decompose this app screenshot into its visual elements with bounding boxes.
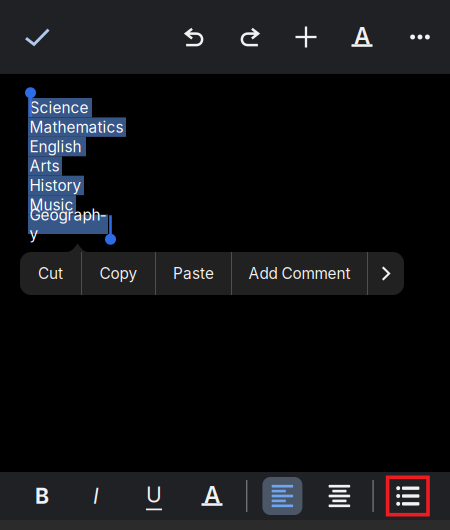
staticText: Music xyxy=(29,196,73,214)
button[interactable]: Italic xyxy=(77,475,115,516)
button[interactable]: Undo xyxy=(166,0,222,74)
staticText: A xyxy=(354,22,370,49)
button[interactable]: Add Comment xyxy=(232,252,367,295)
staticText: Add Comment xyxy=(248,264,350,283)
staticText: History xyxy=(29,176,81,195)
staticText: Geography xyxy=(29,206,105,243)
button[interactable]: Bulleted list xyxy=(386,475,430,516)
button[interactable]: Align left xyxy=(262,477,302,515)
button[interactable]: Text formatting xyxy=(334,0,390,74)
staticText: Arts xyxy=(29,157,59,175)
button[interactable]: More xyxy=(390,0,450,74)
staticText: Paste xyxy=(173,264,214,283)
staticText: B xyxy=(35,483,49,509)
staticText: U xyxy=(146,482,162,507)
staticText: English xyxy=(29,137,81,156)
button[interactable]: Copy xyxy=(82,252,155,295)
button[interactable]: Redo xyxy=(222,0,278,74)
staticText: I xyxy=(93,483,99,509)
staticText: Science xyxy=(29,98,88,117)
staticText: Cut xyxy=(38,264,63,283)
button[interactable]: Accept xyxy=(0,0,74,74)
button[interactable]: Underline xyxy=(135,475,173,516)
staticText: Copy xyxy=(99,264,137,283)
button[interactable]: Text colour xyxy=(193,475,231,516)
button[interactable]: Cut xyxy=(20,252,81,295)
button[interactable]: Paste xyxy=(156,252,231,295)
button[interactable]: Align right xyxy=(320,477,358,515)
button[interactable]: More actions xyxy=(368,252,404,295)
button[interactable]: Bold xyxy=(23,475,61,516)
button[interactable]: Insert xyxy=(278,0,334,74)
staticText: Mathematics xyxy=(29,118,123,136)
staticText: A xyxy=(204,481,220,508)
